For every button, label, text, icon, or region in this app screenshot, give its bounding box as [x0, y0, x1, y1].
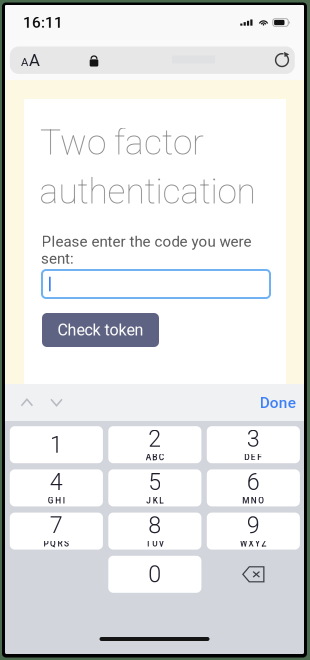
staticText: Please enter the code you were [41, 233, 251, 250]
button[interactable]: Check token [42, 313, 159, 347]
staticText: ABC [146, 452, 164, 462]
staticText: 0 [148, 561, 161, 588]
staticText: DEF [244, 452, 262, 462]
staticText: A [21, 55, 28, 69]
staticText: Check token [57, 321, 143, 339]
staticText: MNO [242, 496, 264, 505]
button[interactable]: Done [254, 386, 302, 419]
button[interactable]: Delete [207, 556, 300, 593]
staticText: 2 [148, 425, 161, 452]
button[interactable]: 4 [10, 469, 103, 506]
button[interactable]: 1 [10, 426, 103, 463]
staticText: WXYZ [240, 539, 267, 549]
staticText: authentication [39, 171, 255, 212]
staticText: 4 [50, 468, 63, 496]
button[interactable]: 9 [207, 513, 300, 550]
button[interactable]: 2 [108, 426, 201, 463]
staticText: 8 [148, 512, 161, 539]
button[interactable]: 5 [108, 469, 201, 506]
staticText: TUV [146, 539, 164, 549]
staticText: 3 [247, 425, 260, 452]
button[interactable]: Previous field [11, 386, 43, 419]
button[interactable]: 0 [108, 556, 201, 593]
button[interactable]: Reload page [269, 46, 295, 74]
button[interactable]: Page settings [12, 46, 48, 74]
staticText: 16:11 [23, 13, 63, 31]
button[interactable]: 7 [10, 513, 103, 550]
staticText: Done [260, 394, 296, 412]
staticText: Two factor [40, 122, 204, 163]
staticText: 5 [148, 468, 161, 496]
staticText: 7 [50, 512, 63, 539]
button[interactable]: Next field [40, 386, 72, 419]
button[interactable]: 3 [207, 426, 300, 463]
staticText: 1 [50, 431, 63, 458]
staticText: JKL [146, 496, 163, 505]
button[interactable]: 8 [108, 513, 201, 550]
button[interactable]: 6 [207, 469, 300, 506]
staticText: 6 [247, 468, 260, 496]
staticText: 9 [247, 512, 260, 539]
staticText: sent: [41, 250, 74, 267]
staticText: A [29, 50, 40, 70]
staticText: PQRS [44, 539, 69, 549]
staticText: GHI [48, 496, 65, 505]
